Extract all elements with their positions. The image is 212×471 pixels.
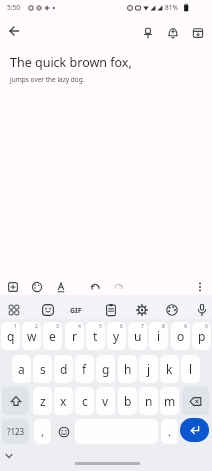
staticText: 81%: [165, 3, 178, 12]
staticText: m: [164, 393, 176, 409]
button[interactable]: [150, 5, 156, 11]
button[interactable]: [89, 281, 101, 293]
staticText: o: [177, 328, 185, 344]
staticText: i: [157, 328, 161, 344]
staticText: a: [18, 361, 25, 377]
button[interactable]: [52, 6, 56, 10]
button[interactable]: o: [171, 322, 190, 350]
button[interactable]: ?123: [2, 419, 29, 444]
button[interactable]: z: [33, 387, 52, 415]
staticText: d: [60, 361, 68, 377]
button[interactable]: [7, 303, 21, 317]
button[interactable]: w: [22, 322, 41, 350]
button[interactable]: i: [149, 322, 168, 350]
button[interactable]: g: [96, 355, 115, 383]
button[interactable]: x: [54, 387, 73, 415]
button[interactable]: [167, 27, 179, 39]
button[interactable]: [54, 419, 73, 444]
button[interactable]: a: [12, 355, 31, 383]
staticText: l: [189, 361, 193, 377]
button[interactable]: [165, 303, 179, 317]
button[interactable]: [4, 451, 14, 461]
button[interactable]: [104, 303, 118, 317]
button[interactable]: [194, 281, 206, 293]
staticText: x: [60, 393, 67, 409]
button[interactable]: e: [43, 322, 62, 350]
staticText: 3: [56, 323, 59, 330]
staticText: n: [145, 393, 153, 409]
staticText: 5:50: [7, 3, 20, 12]
button[interactable]: h: [118, 355, 137, 383]
staticText: w: [27, 328, 37, 344]
button[interactable]: ,: [34, 419, 51, 444]
staticText: v: [102, 393, 109, 409]
button[interactable]: [182, 3, 191, 12]
button[interactable]: y: [107, 322, 126, 350]
button[interactable]: [157, 5, 163, 11]
staticText: z: [40, 393, 46, 409]
staticText: j: [147, 361, 151, 377]
staticText: ?123: [7, 426, 25, 437]
button[interactable]: [44, 5, 50, 11]
button[interactable]: [195, 303, 209, 317]
button[interactable]: v: [96, 387, 115, 415]
button[interactable]: j: [139, 355, 158, 383]
staticText: GIF: [70, 306, 82, 316]
staticText: e: [49, 328, 56, 344]
staticText: p: [198, 328, 206, 344]
button[interactable]: b: [118, 387, 137, 415]
button[interactable]: d: [54, 355, 73, 383]
button[interactable]: u: [128, 322, 147, 350]
staticText: t: [93, 328, 98, 344]
staticText: ,: [41, 424, 44, 439]
staticText: r: [72, 328, 77, 344]
button[interactable]: [8, 25, 20, 37]
staticText: The quick brown fox,: [10, 54, 132, 71]
staticText: 5: [99, 323, 102, 330]
button[interactable]: [135, 5, 141, 11]
staticText: 6: [120, 323, 123, 330]
staticText: 8: [162, 323, 165, 330]
button[interactable]: f: [75, 355, 94, 383]
button[interactable]: q: [1, 322, 20, 350]
button[interactable]: [55, 281, 67, 293]
button[interactable]: [113, 281, 125, 293]
staticText: 7: [141, 323, 144, 330]
button[interactable]: k: [160, 355, 179, 383]
staticText: s: [40, 361, 46, 377]
staticText: 1: [14, 323, 17, 330]
staticText: k: [166, 361, 173, 377]
staticText: 9: [184, 323, 187, 330]
button[interactable]: [143, 5, 149, 11]
button[interactable]: n: [139, 387, 158, 415]
staticText: q: [7, 328, 15, 344]
button[interactable]: [127, 5, 133, 11]
button[interactable]: [135, 303, 149, 317]
button[interactable]: [41, 303, 55, 317]
staticText: u: [134, 328, 142, 344]
staticText: h: [124, 361, 132, 377]
button[interactable]: [2, 387, 29, 415]
button[interactable]: [7, 281, 19, 293]
button[interactable]: .: [161, 419, 178, 444]
staticText: jumps over the lazy dog.: [10, 75, 85, 84]
button[interactable]: [31, 281, 43, 293]
button[interactable]: [142, 27, 154, 39]
staticText: c: [82, 393, 88, 409]
button[interactable]: t: [86, 322, 105, 350]
button[interactable]: p: [192, 322, 211, 350]
button[interactable]: [36, 5, 42, 11]
button[interactable]: m: [160, 387, 179, 415]
staticText: .: [168, 424, 171, 439]
button[interactable]: [28, 5, 34, 11]
button[interactable]: s: [33, 355, 52, 383]
staticText: g: [102, 361, 110, 377]
button[interactable]: [192, 27, 204, 39]
button[interactable]: r: [65, 322, 84, 350]
staticText: 4: [78, 323, 81, 330]
button[interactable]: [180, 418, 209, 442]
button[interactable]: l: [181, 355, 200, 383]
button[interactable]: [182, 387, 209, 415]
button[interactable]: c: [75, 387, 94, 415]
